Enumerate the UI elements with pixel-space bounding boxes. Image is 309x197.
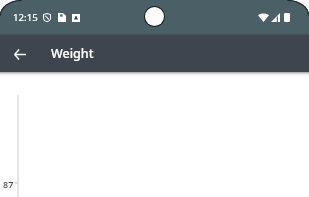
button[interactable]: Back xyxy=(6,40,34,68)
staticText: 87 xyxy=(3,178,14,190)
staticText: Weight xyxy=(51,45,94,62)
staticText: 12:15 xyxy=(13,11,38,24)
